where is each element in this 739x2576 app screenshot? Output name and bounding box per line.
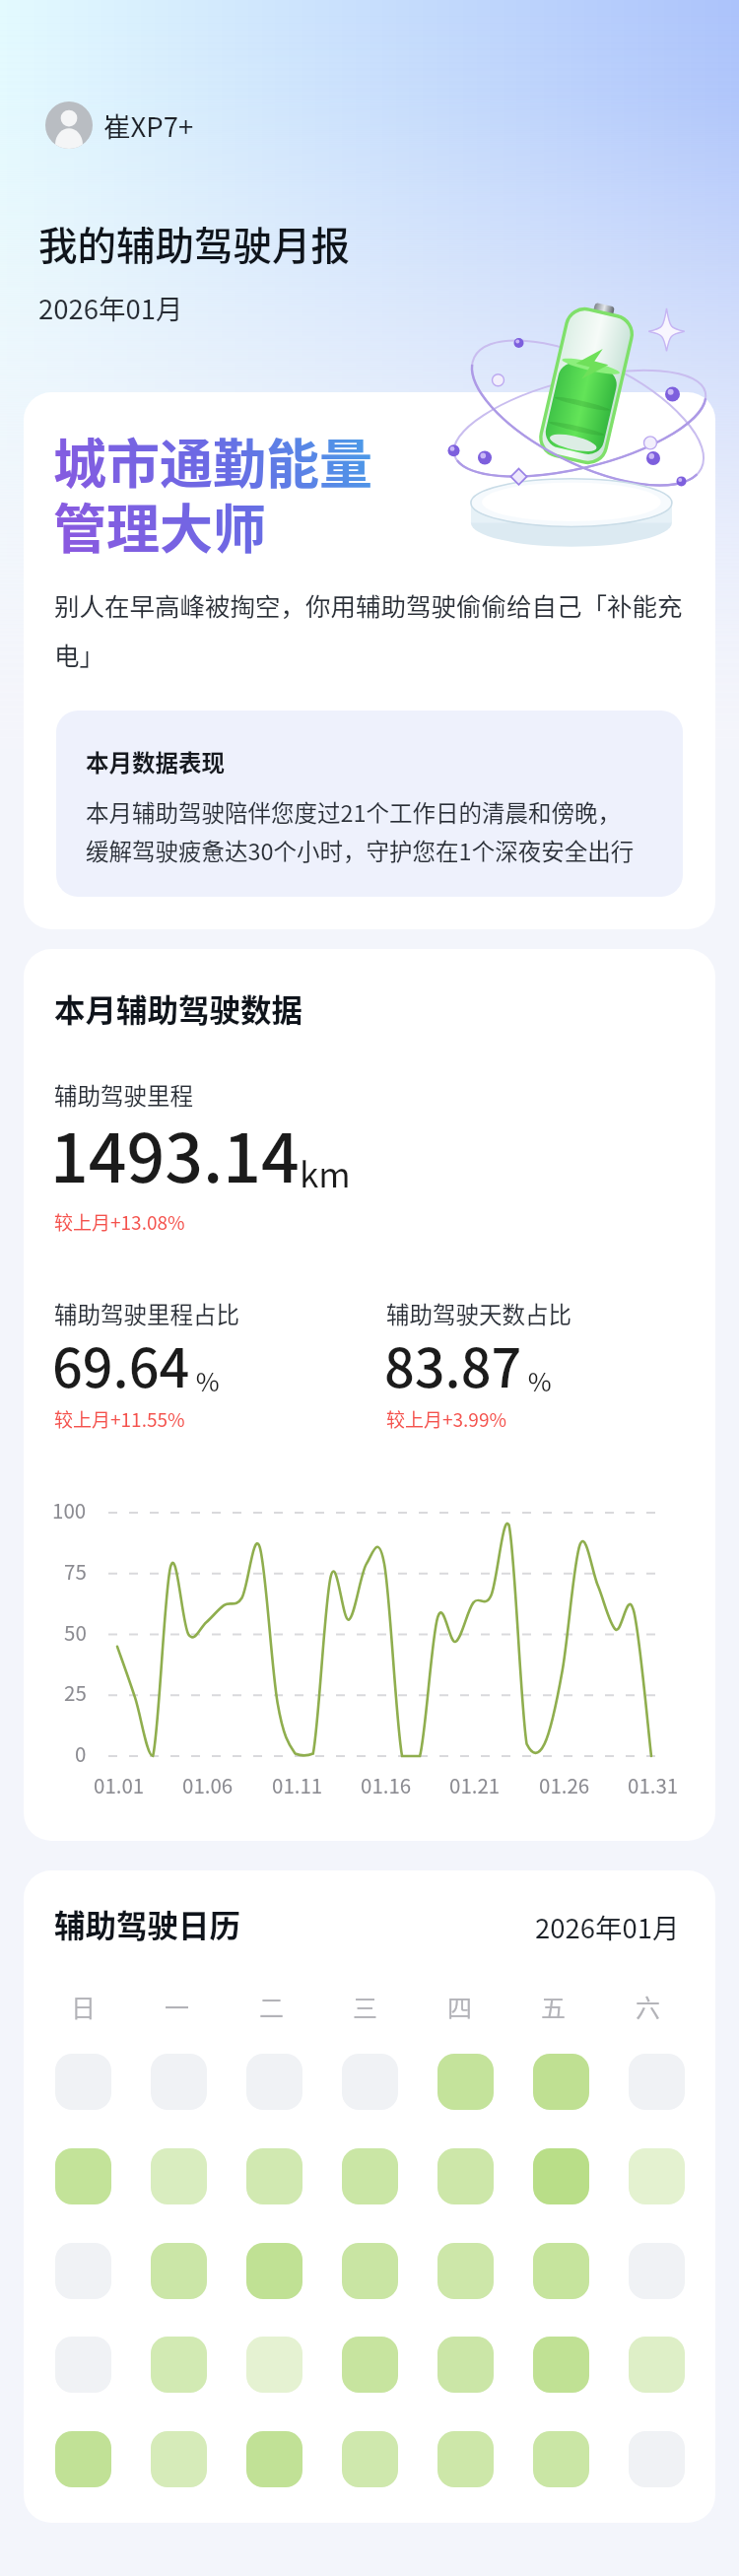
staticText: 69.64 (52, 1325, 190, 1402)
staticText: 较上月+13.08% (54, 1208, 185, 1236)
button[interactable] (437, 2243, 494, 2299)
button[interactable] (55, 2243, 111, 2299)
staticText: 0 (75, 1738, 87, 1768)
button[interactable] (151, 2054, 207, 2110)
staticText: 较上月+3.99% (386, 1405, 506, 1433)
button[interactable] (437, 2431, 494, 2487)
button[interactable] (533, 2148, 589, 2204)
staticText: 六 (636, 1989, 661, 2024)
button[interactable]: 崔XP7+ (45, 102, 194, 149)
button[interactable] (55, 2148, 111, 2204)
staticText: 较上月+11.55% (54, 1405, 185, 1433)
staticText: 本月辅助驾驶陪伴您度过21个工作日的清晨和傍晚， 缓解驾驶疲惫达30个小时，守护… (86, 795, 635, 867)
button[interactable] (246, 2431, 302, 2487)
staticText: 二 (259, 1989, 285, 2024)
staticText: 2026年01月 (535, 1907, 680, 1946)
button[interactable] (533, 2337, 589, 2393)
button[interactable] (533, 2431, 589, 2487)
button[interactable] (437, 2054, 494, 2110)
staticText: 本月辅助驾驶数据 (54, 985, 303, 1031)
button[interactable] (246, 2337, 302, 2393)
button[interactable] (342, 2243, 398, 2299)
staticText: 01.11 (272, 1770, 323, 1799)
staticText: 辅助驾驶里程占比 (54, 1297, 239, 1330)
button[interactable] (533, 2054, 589, 2110)
button[interactable] (629, 2431, 685, 2487)
button[interactable] (55, 2431, 111, 2487)
button[interactable] (533, 2243, 589, 2299)
staticText: 一 (165, 1989, 190, 2024)
button[interactable] (437, 2148, 494, 2204)
staticText: 100 (52, 1495, 87, 1525)
staticText: 01.26 (539, 1770, 590, 1799)
button[interactable] (437, 2337, 494, 2393)
button[interactable] (629, 2337, 685, 2393)
button[interactable] (151, 2431, 207, 2487)
staticText: 辅助驾驶日历 (54, 1901, 241, 1946)
button[interactable] (629, 2243, 685, 2299)
staticText: 2026年01月 (38, 288, 183, 327)
staticText: 01.01 (94, 1770, 145, 1799)
button[interactable] (246, 2148, 302, 2204)
staticText: % (522, 1362, 552, 1399)
staticText: km (300, 1147, 351, 1197)
staticText: 01.21 (449, 1770, 501, 1799)
button[interactable] (342, 2148, 398, 2204)
staticText: 四 (447, 1989, 473, 2024)
staticText: 01.16 (361, 1770, 412, 1799)
button[interactable] (151, 2148, 207, 2204)
button[interactable] (151, 2243, 207, 2299)
button[interactable] (342, 2337, 398, 2393)
staticText: 辅助驾驶天数占比 (386, 1297, 571, 1330)
staticText: 崔XP7+ (103, 105, 194, 145)
button[interactable] (342, 2054, 398, 2110)
button[interactable] (55, 2054, 111, 2110)
staticText: 75 (64, 1556, 87, 1586)
staticText: 01.06 (182, 1770, 234, 1799)
button[interactable] (151, 2337, 207, 2393)
staticText: 我的辅助驾驶月报 (38, 215, 350, 271)
staticText: % (190, 1362, 220, 1399)
button[interactable] (246, 2243, 302, 2299)
button[interactable] (629, 2148, 685, 2204)
staticText: 01.31 (628, 1770, 679, 1799)
staticText: 别人在早高峰被掏空，你用辅助驾驶偷偷给自己「补能充 电」 (54, 586, 683, 672)
staticText: 25 (64, 1677, 87, 1707)
staticText: 日 (71, 1989, 97, 2024)
button[interactable] (342, 2431, 398, 2487)
staticText: 50 (64, 1617, 87, 1647)
staticText: 城市通勤能量 管理大师 (53, 422, 372, 564)
staticText: 三 (353, 1989, 378, 2024)
staticText: 83.87 (384, 1325, 522, 1402)
staticText: 本月数据表现 (86, 745, 225, 779)
button[interactable] (55, 2337, 111, 2393)
staticText: 辅助驾驶里程 (54, 1078, 193, 1112)
staticText: 五 (541, 1989, 567, 2024)
button[interactable] (246, 2054, 302, 2110)
staticText: 1493.14 (50, 1105, 300, 1201)
button[interactable] (629, 2054, 685, 2110)
